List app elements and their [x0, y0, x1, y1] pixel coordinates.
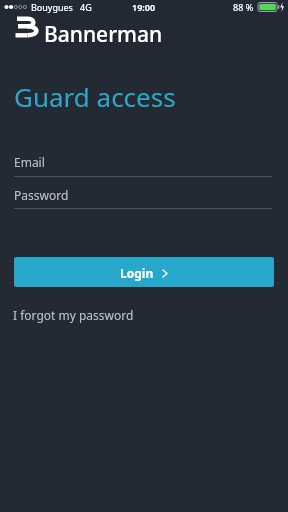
staticText: Password: [14, 187, 69, 203]
staticText: Bouygues: [31, 1, 73, 13]
button[interactable]: I forgot my password: [13, 307, 134, 323]
staticText: Bannerman: [44, 20, 163, 49]
staticText: Login: [120, 265, 154, 281]
staticText: Email: [14, 154, 45, 170]
button[interactable]: Email: [14, 150, 272, 177]
button[interactable]: Password: [14, 183, 272, 209]
button[interactable]: Login: [14, 257, 274, 287]
staticText: 4G: [80, 1, 92, 13]
staticText: Guard access: [14, 79, 176, 114]
staticText: I forgot my password: [13, 307, 134, 323]
staticText: 19:00: [132, 1, 156, 13]
staticText: 88 %: [233, 1, 254, 13]
